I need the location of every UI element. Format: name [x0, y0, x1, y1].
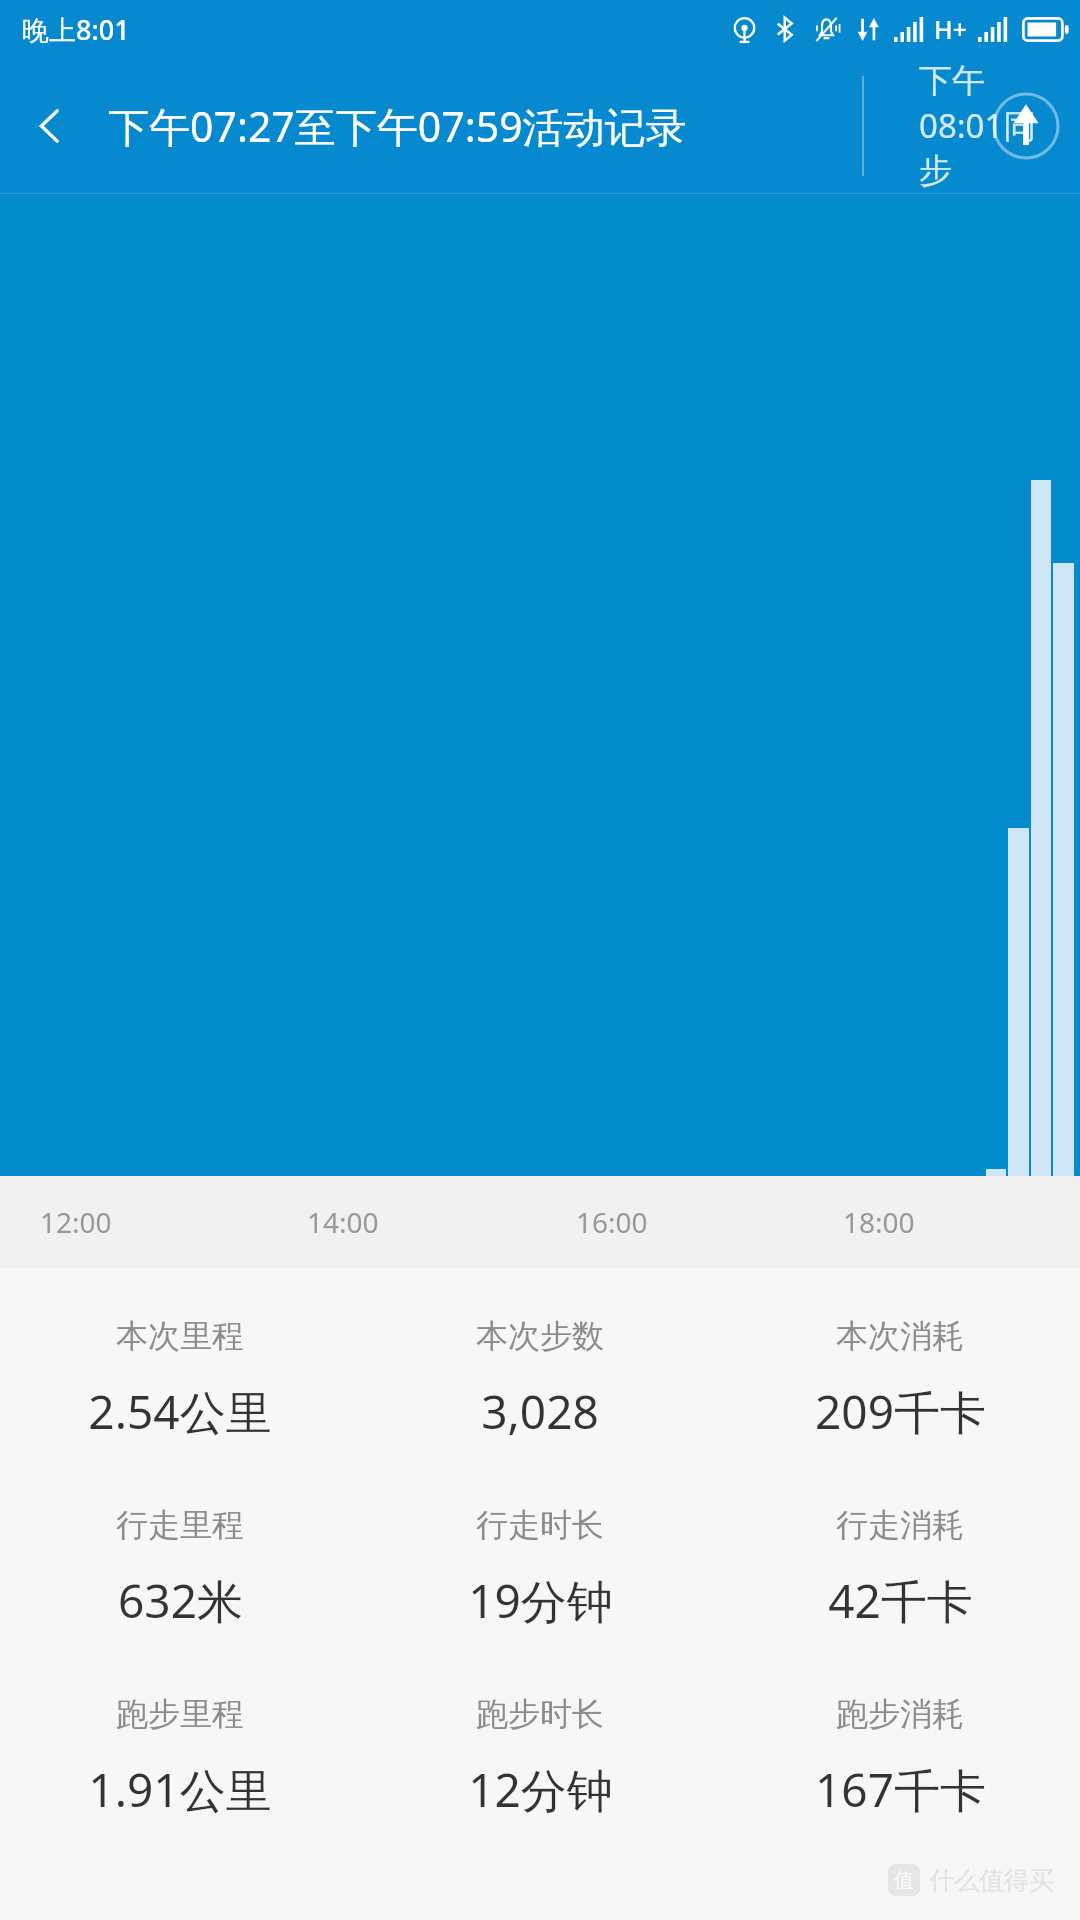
staticText: 3,028	[481, 1380, 599, 1443]
staticText: 下午08:01同步	[919, 60, 1047, 192]
button[interactable]: 跑步里程	[0, 1694, 360, 1821]
staticText: 1.91公里	[88, 1758, 272, 1821]
staticText: 本次里程	[116, 1316, 244, 1356]
staticText: 42千卡	[828, 1569, 973, 1632]
staticText: 19分钟	[468, 1569, 613, 1632]
button[interactable]: 下午08:01同步	[862, 58, 1080, 194]
staticText: 行走消耗	[836, 1505, 964, 1545]
staticText: 14:00	[307, 1203, 379, 1241]
staticText: H+	[934, 12, 968, 46]
button[interactable]: 行走时长	[360, 1505, 720, 1632]
staticText: 209千卡	[815, 1380, 986, 1443]
staticText: 值	[894, 1868, 914, 1893]
button[interactable]: 本次消耗	[720, 1316, 1080, 1443]
button[interactable]: 本次步数	[360, 1316, 720, 1443]
button[interactable]: Back	[0, 58, 100, 194]
staticText: 18:00	[843, 1203, 915, 1241]
button[interactable]: 跑步时长	[360, 1694, 720, 1821]
other: Sync	[992, 92, 1060, 160]
staticText: 632米	[118, 1569, 243, 1632]
staticText: 行走时长	[476, 1505, 604, 1545]
staticText: 跑步消耗	[836, 1694, 964, 1734]
button[interactable]: 行走里程	[0, 1505, 360, 1632]
staticText: 本次步数	[476, 1316, 604, 1356]
staticText: 下午07:27至下午07:59活动记录	[108, 98, 687, 154]
staticText: 16:00	[576, 1203, 648, 1241]
staticText: 晚上8:01	[22, 11, 130, 48]
button[interactable]: 跑步消耗	[720, 1694, 1080, 1821]
staticText: 本次消耗	[836, 1316, 964, 1356]
button[interactable]: 行走消耗	[720, 1505, 1080, 1632]
staticText: 跑步里程	[116, 1694, 244, 1734]
staticText: 什么值得买	[929, 1865, 1054, 1896]
staticText: 行走里程	[116, 1505, 244, 1545]
staticText: 12:00	[40, 1203, 112, 1241]
staticText: 跑步时长	[476, 1694, 604, 1734]
button[interactable]: 本次里程	[0, 1316, 360, 1443]
staticText: 167千卡	[815, 1758, 986, 1821]
staticText: 12分钟	[468, 1758, 613, 1821]
staticText: 2.54公里	[88, 1380, 272, 1443]
